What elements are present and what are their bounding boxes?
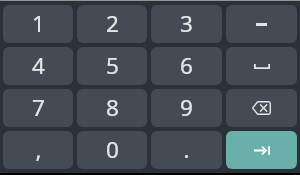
staticText: 2 [106,8,119,39]
button[interactable]: 1 [3,5,73,43]
button[interactable]: 6 [151,47,222,85]
button[interactable]: 7 [3,89,73,127]
staticText: 7 [32,92,45,123]
staticText: 5 [106,50,119,81]
button[interactable]: , [3,131,73,169]
button[interactable]: 4 [3,47,73,85]
button[interactable]: Enter [226,131,297,169]
staticText: 1 [32,8,45,39]
staticText: 6 [180,50,193,81]
button[interactable]: Minus [226,5,297,43]
button[interactable]: 2 [77,5,147,43]
button[interactable]: 9 [151,89,222,127]
button[interactable]: 3 [151,5,222,43]
button[interactable]: Backspace [226,89,297,127]
staticText: 8 [106,92,119,123]
staticText: 4 [32,50,45,81]
button[interactable]: 0 [77,131,147,169]
staticText: . [183,134,190,165]
staticText: , [35,134,42,165]
staticText: 3 [180,8,193,39]
button[interactable]: Space [226,47,297,85]
button[interactable]: . [151,131,222,169]
button[interactable]: 5 [77,47,147,85]
button[interactable]: 8 [77,89,147,127]
staticText: 9 [180,92,193,123]
staticText: 0 [106,134,119,165]
